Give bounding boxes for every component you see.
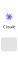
staticText: Claude: [3, 24, 15, 29]
